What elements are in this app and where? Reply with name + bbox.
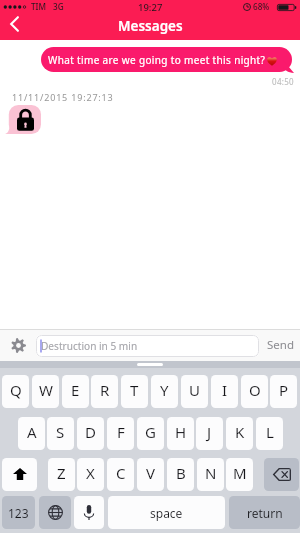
button[interactable]: X — [77, 458, 104, 491]
button[interactable]: F — [107, 417, 134, 450]
button[interactable]: Dictation — [74, 496, 104, 529]
button[interactable]: G — [137, 417, 164, 450]
button[interactable]: E — [62, 375, 89, 408]
staticText: 19:27 — [138, 1, 163, 14]
staticText: E — [71, 380, 80, 400]
staticText: X — [86, 463, 95, 483]
button[interactable]: P — [270, 375, 297, 408]
button[interactable]: R — [91, 375, 118, 408]
staticText: Messages — [118, 17, 183, 35]
button[interactable]: Q — [2, 375, 29, 408]
staticText: Z — [57, 463, 66, 483]
button[interactable]: V — [137, 458, 164, 491]
button[interactable]: I — [211, 375, 238, 408]
staticText: 68% — [253, 1, 270, 12]
button[interactable]: Backspace — [264, 458, 299, 491]
staticText: Q — [10, 380, 22, 400]
button[interactable]: Y — [151, 375, 178, 408]
button[interactable]: Destruction in 5 min — [36, 335, 259, 357]
button[interactable]: space — [108, 496, 225, 529]
button[interactable]: L — [256, 417, 283, 450]
button[interactable]: Back — [0, 13, 30, 40]
button[interactable]: What time are we going to meet this nigh… — [41, 47, 292, 72]
button[interactable]: 123 — [2, 496, 35, 529]
button[interactable]: D — [77, 417, 104, 450]
staticText: 04:50 — [272, 76, 294, 87]
button[interactable]: return — [229, 496, 300, 529]
staticText: J — [207, 422, 212, 442]
staticText: G — [145, 422, 156, 442]
button[interactable]: T — [121, 375, 148, 408]
staticText: return — [247, 505, 283, 521]
staticText: TIM — [31, 1, 47, 12]
staticText: 123 — [8, 505, 29, 521]
staticText: R — [100, 380, 110, 400]
button[interactable]: N — [197, 458, 224, 491]
staticText: V — [146, 463, 156, 483]
button[interactable]: Settings — [8, 335, 28, 355]
button[interactable]: H — [167, 417, 194, 450]
staticText: C — [116, 463, 126, 483]
staticText: Destruction in 5 min — [41, 339, 138, 353]
staticText: What time are we going to meet this nigh… — [48, 53, 266, 67]
staticText: W — [39, 380, 53, 400]
staticText: 3G — [53, 1, 64, 12]
staticText: T — [130, 380, 139, 400]
staticText: P — [279, 380, 289, 400]
button[interactable]: M — [226, 458, 253, 491]
staticText: N — [205, 463, 217, 483]
button[interactable]: J — [196, 417, 223, 450]
staticText: M — [233, 463, 247, 483]
button[interactable]: U — [181, 375, 208, 408]
button[interactable]: Shift — [2, 458, 37, 491]
staticText: I — [222, 380, 228, 400]
staticText: S — [56, 422, 65, 442]
staticText: Y — [160, 380, 169, 400]
button[interactable]: O — [241, 375, 268, 408]
button[interactable]: W — [32, 375, 59, 408]
button[interactable]: Send — [261, 329, 300, 361]
button[interactable]: Change keyboard — [39, 496, 71, 529]
button[interactable]: C — [107, 458, 134, 491]
button[interactable]: Z — [48, 458, 75, 491]
staticText: D — [85, 422, 96, 442]
button[interactable]: A — [18, 417, 45, 450]
staticText: U — [189, 380, 200, 400]
staticText: B — [176, 463, 186, 483]
staticText: L — [266, 422, 274, 442]
staticText: 11/11/2015 19:27:13 — [12, 91, 114, 103]
staticText: Send — [267, 337, 294, 353]
button[interactable]: K — [226, 417, 253, 450]
button[interactable]: S — [47, 417, 74, 450]
staticText: space — [150, 505, 183, 521]
staticText: O — [249, 380, 261, 400]
staticText: K — [235, 422, 245, 442]
staticText: A — [27, 422, 37, 442]
staticText: F — [117, 422, 125, 442]
button[interactable]: B — [167, 458, 194, 491]
staticText: H — [175, 422, 187, 442]
